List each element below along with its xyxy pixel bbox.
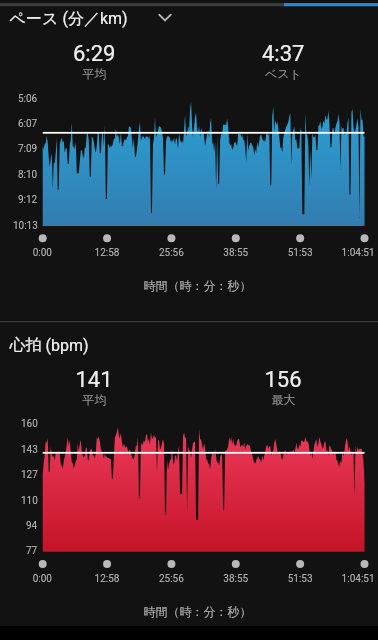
button[interactable]: 心拍 (bpm) bbox=[0, 332, 178, 357]
button[interactable]: ペース (分／km) グラフを切り替え bbox=[0, 7, 178, 32]
